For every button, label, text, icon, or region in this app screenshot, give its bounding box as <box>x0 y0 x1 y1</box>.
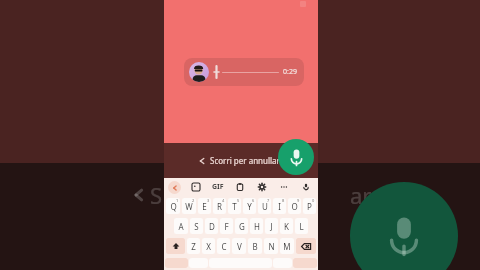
button[interactable]: Symbols <box>165 258 188 268</box>
button[interactable]: settings <box>256 181 268 193</box>
button[interactable]: Y <box>243 198 256 214</box>
button[interactable]: Scorri per annullare <box>192 151 291 170</box>
button[interactable]: A <box>174 218 188 234</box>
button[interactable]: Shift <box>166 238 185 254</box>
button[interactable]: X <box>202 238 215 254</box>
staticText: E <box>202 201 207 212</box>
staticText: A <box>178 221 184 232</box>
button[interactable]: N <box>264 238 278 254</box>
other: Backspace <box>301 243 311 250</box>
button[interactable]: H <box>250 218 263 234</box>
button[interactable]: 0:29 <box>184 58 304 86</box>
staticText: O <box>291 201 298 212</box>
button[interactable]: M <box>280 238 294 254</box>
button[interactable]: O <box>288 198 301 214</box>
staticText: 0 <box>312 198 315 203</box>
button[interactable]: W <box>182 198 196 214</box>
button[interactable]: V <box>232 238 246 254</box>
button[interactable]: GIF <box>212 182 224 192</box>
staticText: are <box>350 180 384 210</box>
button[interactable]: B <box>248 238 262 254</box>
staticText: Z <box>191 241 196 252</box>
button[interactable]: Z <box>187 238 200 254</box>
staticText: 4 <box>222 198 225 203</box>
button[interactable]: Q <box>166 198 180 214</box>
staticText: F <box>224 221 229 232</box>
button[interactable]: D <box>205 218 218 234</box>
staticText: J <box>270 221 273 232</box>
staticText: S <box>194 221 199 232</box>
staticText: C <box>221 241 227 252</box>
staticText: I <box>278 201 281 212</box>
staticText: S <box>150 180 163 210</box>
button[interactable]: R <box>213 198 226 214</box>
staticText: 1 <box>176 198 179 203</box>
staticText: X <box>206 241 211 252</box>
staticText: L <box>299 221 304 232</box>
button[interactable]: K <box>280 218 293 234</box>
staticText: 6 <box>252 198 255 203</box>
button[interactable]: S <box>190 218 203 234</box>
staticText: G <box>239 221 245 232</box>
staticText: R <box>217 201 222 212</box>
button[interactable]: T <box>228 198 241 214</box>
staticText: 9 <box>297 198 300 203</box>
staticText: V <box>237 241 242 252</box>
button[interactable]: Record voice message <box>278 139 314 175</box>
staticText: 5 <box>237 198 240 203</box>
button[interactable]: F <box>220 218 233 234</box>
staticText: T <box>232 201 237 212</box>
button[interactable]: sticker <box>190 181 202 193</box>
staticText: W <box>185 201 193 212</box>
staticText: 3 <box>207 198 210 203</box>
staticText: H <box>254 221 260 232</box>
staticText: D <box>209 221 215 232</box>
button[interactable]: U <box>258 198 271 214</box>
staticText: 0:29 <box>283 67 297 77</box>
staticText: Scorri per annullare <box>210 155 285 166</box>
staticText: P <box>307 201 312 212</box>
staticText: U <box>262 201 268 212</box>
button[interactable]: P <box>303 198 316 214</box>
staticText: B <box>252 241 258 252</box>
staticText: 8 <box>282 198 285 203</box>
other: Shift <box>172 242 180 250</box>
button[interactable]: clipboard <box>234 181 246 193</box>
button[interactable]: J <box>265 218 278 234</box>
staticText: Y <box>247 201 252 212</box>
staticText: Q <box>170 201 177 212</box>
staticText: K <box>284 221 289 232</box>
button[interactable]: L <box>295 218 308 234</box>
button[interactable]: Backspace <box>296 238 316 254</box>
staticText: M <box>283 241 291 252</box>
staticText: 7 <box>267 198 270 203</box>
button[interactable]: I <box>273 198 286 214</box>
button[interactable]: E <box>198 198 211 214</box>
staticText: N <box>268 241 275 252</box>
button[interactable]: C <box>217 238 230 254</box>
button[interactable]: G <box>235 218 248 234</box>
button[interactable]: Enter <box>293 258 317 268</box>
staticText: 2 <box>192 198 195 203</box>
button[interactable]: mic <box>300 181 312 193</box>
button[interactable]: more <box>278 181 290 193</box>
button[interactable]: Back <box>168 181 181 194</box>
